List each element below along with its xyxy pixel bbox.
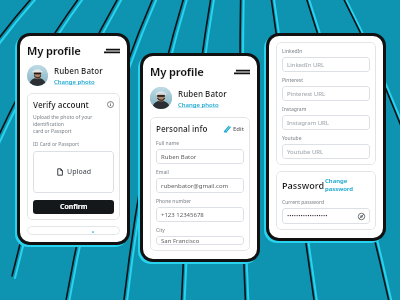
staticText: Instagram	[282, 106, 307, 113]
staticText: Youtube	[282, 135, 302, 142]
button[interactable]: Edit	[223, 125, 244, 133]
staticText: Verify account	[33, 99, 89, 110]
staticText: Current password	[282, 199, 324, 206]
staticText: ••••••••••••••••••	[287, 212, 328, 220]
button[interactable]: Confirm	[33, 200, 114, 214]
staticText: Confirm	[60, 202, 88, 212]
button[interactable]: Pinterest URL	[282, 86, 370, 101]
staticText: Pinterest	[282, 77, 304, 84]
button[interactable]: Change photo	[54, 78, 95, 86]
button[interactable]: Instagram URL	[282, 115, 370, 130]
staticText: Change photo	[178, 101, 219, 109]
button[interactable]: Change password	[325, 177, 370, 193]
staticText: Edit	[233, 125, 244, 133]
staticText: Instagram URL	[287, 119, 329, 127]
staticText: Email	[156, 169, 169, 176]
button[interactable]: Upload	[33, 151, 114, 193]
staticText: LinkedIn URL	[287, 61, 325, 69]
button[interactable]: Profile photo	[150, 87, 172, 109]
button[interactable]: Ruben Bator	[156, 149, 244, 164]
button[interactable]: Menu	[104, 45, 120, 57]
button[interactable]: LinkedIn URL	[282, 57, 370, 72]
staticText: Full name	[156, 140, 179, 147]
staticText: Change photo	[54, 78, 95, 86]
button[interactable]: rubenbator@gmail.com	[156, 178, 244, 193]
button[interactable]: ••••••••••••••••••	[282, 208, 370, 224]
staticText: My profile	[27, 43, 81, 58]
button[interactable]: Profile photo	[27, 65, 48, 86]
staticText: rubenbator@gmail.com	[161, 182, 229, 190]
staticText: +123 12345678	[161, 211, 204, 219]
staticText: Youtube URL	[287, 148, 324, 156]
button[interactable]: +123 12345678	[156, 207, 244, 222]
button[interactable]: Info	[107, 101, 114, 108]
staticText: Change password	[325, 177, 370, 193]
staticText: Pinterest URL	[287, 90, 326, 98]
staticText: City	[156, 227, 165, 234]
button[interactable]: Menu	[234, 66, 250, 78]
staticText: Ruben Bator	[178, 88, 227, 99]
staticText: Personal info	[156, 123, 208, 134]
button[interactable]: Change photo	[178, 101, 219, 109]
staticText: Phone number	[156, 198, 192, 205]
button[interactable]: San Francisco	[156, 236, 244, 245]
staticText: LinkedIn	[282, 48, 303, 55]
staticText: Ruben Bator	[54, 65, 103, 76]
staticText: Password	[282, 179, 325, 191]
staticText: San Francisco	[161, 237, 200, 245]
button[interactable]: Youtube URL	[282, 144, 370, 159]
staticText: Upload the photo of your identification …	[33, 114, 114, 135]
staticText: ID Card or Passport	[33, 141, 79, 148]
button[interactable]: Show password	[358, 213, 365, 220]
staticText: Ruben Bator	[161, 153, 197, 161]
staticText: My profile	[150, 64, 204, 79]
staticText: Upload	[67, 167, 92, 177]
